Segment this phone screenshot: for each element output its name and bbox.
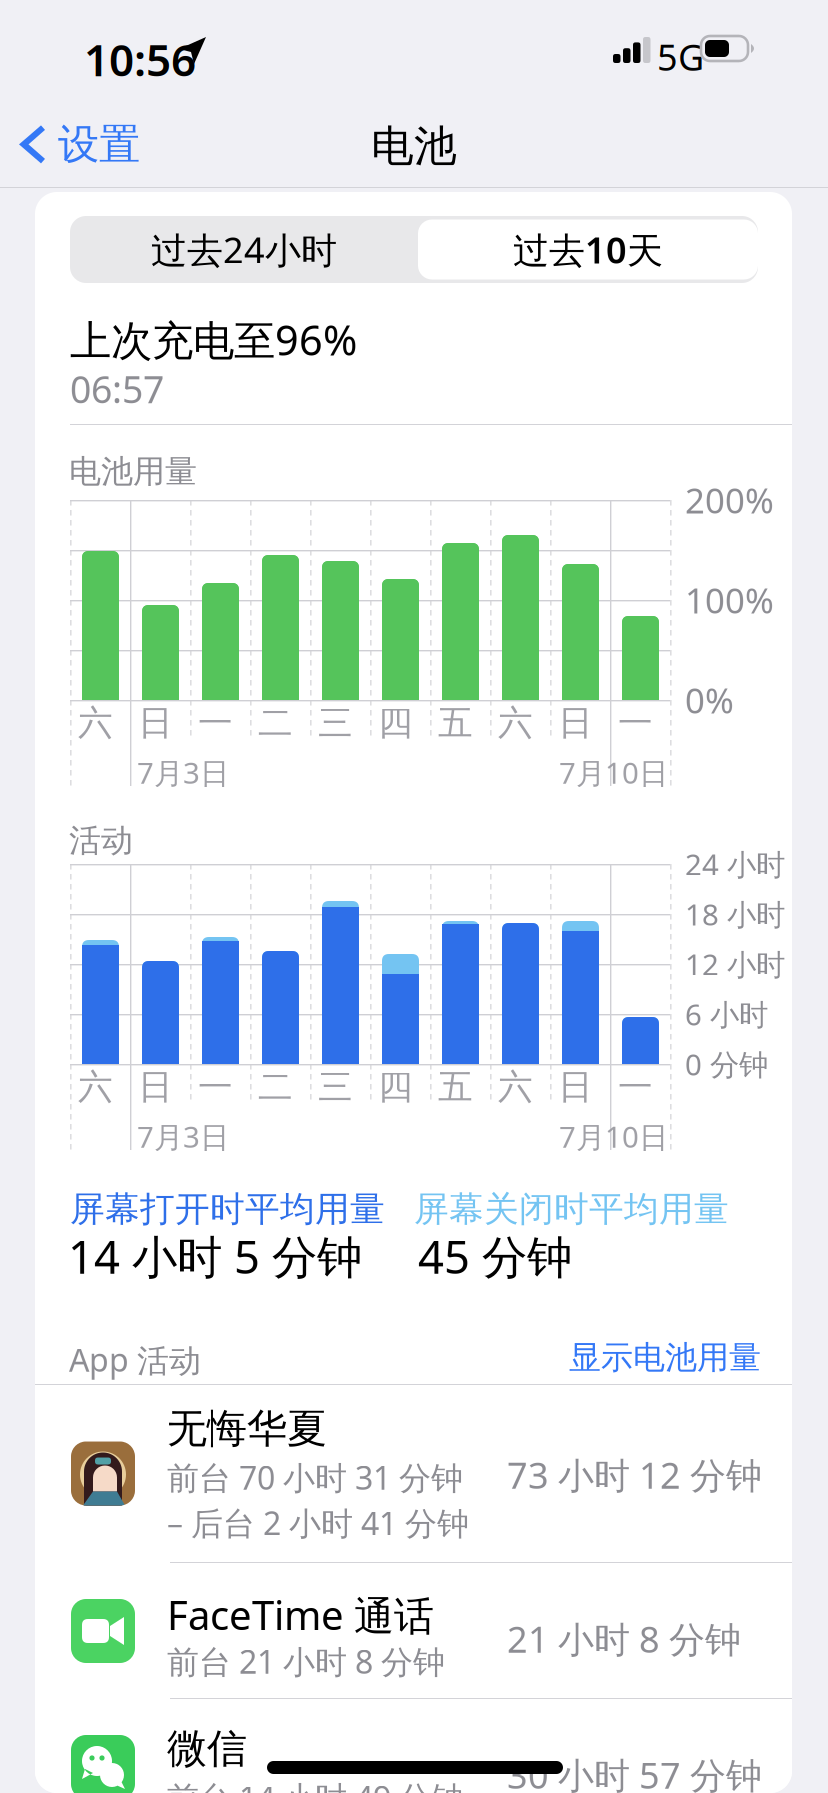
button[interactable]: 过去24小时 [70,216,418,283]
staticText: 21 小时 8 分钟 [507,1615,741,1663]
staticText: 一 [198,702,233,744]
staticText: 设置 [58,119,140,170]
staticText: – 后台 2 小时 41 分钟 [167,1501,469,1544]
staticText: 屏幕关闭时平均用量 [414,1188,729,1231]
staticText: 电池 [371,120,457,172]
staticText: 6 小时 [685,994,768,1033]
staticText: 一 [198,1066,233,1108]
button[interactable]: 无悔华夏 [35,1385,792,1562]
staticText: 屏幕打开时平均用量 [70,1188,385,1231]
staticText: 12 小时 [685,944,785,983]
staticText: 三 [318,702,353,744]
staticText: 日 [138,702,173,744]
staticText: 0% [685,677,734,723]
button[interactable]: 显示电池用量 [35,1338,761,1377]
staticText: 显示电池用量 [569,1338,761,1377]
staticText: 六 [78,1066,113,1108]
staticText: 日 [138,1066,173,1108]
staticText: App 活动 [69,1338,201,1381]
button[interactable]: 微信 [35,1699,792,1793]
staticText: 二 [258,1066,293,1108]
staticText: 前台 21 小时 8 分钟 [167,1640,445,1682]
staticText: 上次充电至96% [70,312,357,367]
staticText: 200% [685,477,774,523]
staticText: 五 [438,1066,473,1108]
staticText: 一 [618,702,653,744]
staticText: 六 [498,1066,533,1108]
staticText: 30 小时 57 分钟 [507,1751,762,1793]
staticText: 5G [657,33,704,81]
staticText: 7月3日 [137,1117,229,1156]
staticText: 06:57 [70,364,164,414]
staticText: 7月10日 [559,1117,668,1156]
staticText: 电池用量 [69,452,197,491]
staticText: 微信 [167,1724,247,1773]
staticText: 73 小时 12 分钟 [507,1451,762,1499]
staticText: 24 小时 [685,844,785,883]
staticText: 四 [378,702,413,744]
staticText: 14 小时 5 分钟 [68,1226,362,1286]
staticText: 日 [558,1066,593,1108]
staticText: 日 [558,702,593,744]
staticText: 五 [438,702,473,744]
button[interactable]: 过去10天 [418,219,758,279]
staticText: 无悔华夏 [167,1404,327,1453]
staticText: 100% [685,577,774,623]
staticText: 前台 70 小时 31 分钟 [167,1456,463,1498]
staticText: FaceTime 通话 [167,1588,434,1641]
staticText: 三 [318,1066,353,1108]
staticText: 18 小时 [685,894,785,933]
staticText: 7月10日 [559,753,668,792]
staticText: 10:56 [84,30,196,88]
staticText: 六 [78,702,113,744]
staticText: 0 分钟 [685,1044,768,1083]
staticText: 过去10天 [513,226,663,273]
staticText: 45 分钟 [418,1226,572,1286]
staticText: 一 [618,1066,653,1108]
staticText: 过去24小时 [151,226,337,273]
staticText: 活动 [69,821,133,860]
button[interactable]: 设置 [0,107,156,182]
staticText: 前台 14 小时 49 分钟 [167,1776,463,1793]
button[interactable]: FaceTime 通话 [35,1563,792,1699]
staticText: 二 [258,702,293,744]
staticText: 7月3日 [137,753,229,792]
staticText: 四 [378,1066,413,1108]
staticText: 六 [498,702,533,744]
